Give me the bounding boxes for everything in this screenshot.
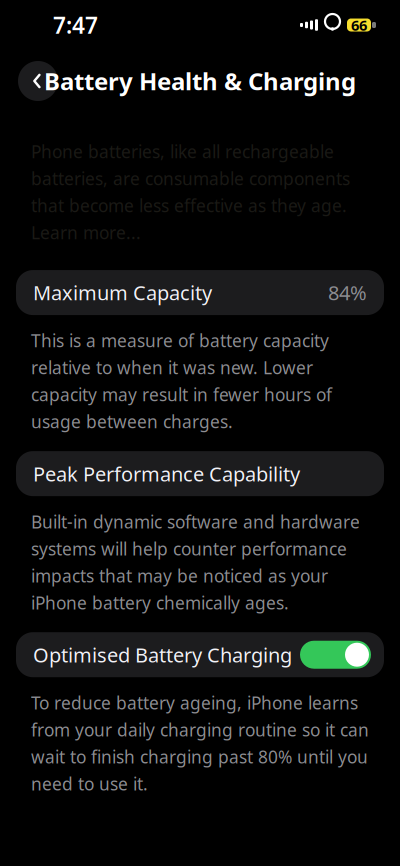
button[interactable]: Back [18,61,58,101]
staticText: Built-in dynamic software and hardware s… [31,510,360,614]
staticText: 7:47 [53,10,98,40]
staticText: This is a measure of battery capacity re… [31,329,332,433]
button[interactable]: Maximum Capacity [16,270,384,315]
button[interactable]: Peak Performance Capability [16,451,384,496]
staticText: Optimised Battery Charging [33,641,292,668]
staticText: 84% [328,279,367,306]
staticText: Phone batteries, like all rechargeable b… [31,140,350,244]
staticText: Battery Health & Charging [44,65,356,97]
staticText: To reduce battery ageing, iPhone learns … [31,691,369,795]
button[interactable]: Optimised Battery Charging [16,632,384,677]
staticText: 66 [351,15,367,35]
staticText: Peak Performance Capability [33,460,300,487]
staticText: Maximum Capacity [33,279,212,306]
